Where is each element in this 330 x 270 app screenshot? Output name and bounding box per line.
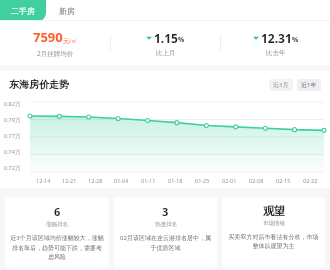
staticText: 近1年 [301,81,317,89]
staticText: 02-15 [276,177,291,184]
staticText: 12-21 [62,177,77,184]
staticText: 东海房价走势 [9,78,69,91]
staticText: 近3月 [273,81,289,89]
button[interactable]: 二手房 [0,0,46,21]
staticText: 02-08 [249,177,264,184]
button[interactable]: 6 [5,197,109,268]
button[interactable]: 近3月 [269,79,293,91]
staticText: 0.72万 [4,164,21,172]
staticText: 12-28 [88,177,103,184]
staticText: 12.31 [261,30,292,46]
staticText: 7590 [33,28,63,46]
staticText: 1.15 [154,30,178,46]
button[interactable]: 观望 [222,197,325,268]
button[interactable]: 近1年 [297,79,321,91]
staticText: % [178,35,185,45]
staticText: 02月该区域在连云港排名居中，属于优质区域 [119,234,212,252]
staticText: 01-04 [114,177,129,184]
staticText: 01-18 [168,177,183,184]
staticText: 01-25 [195,177,210,184]
staticText: 3 [162,204,169,219]
staticText: 6 [54,204,61,219]
staticText: 观望 [263,204,285,218]
staticText: 12-14 [36,177,51,184]
staticText: 近3个月该区域均价涨幅较大，涨幅排名靠后，趋势可能下跌，需要考虑风险 [10,234,104,261]
staticText: 热度排名 [155,221,177,228]
staticText: 01-11 [141,177,156,184]
staticText: 元/㎡ [63,37,78,45]
staticText: 0.79万 [4,116,21,124]
staticText: 0.82万 [4,100,21,108]
button[interactable]: 3 [114,197,217,268]
staticText: 新房 [59,6,75,16]
staticText: 二手房 [11,6,35,16]
staticText: 买卖双方对后市看法有分歧，市场整体以观望为主 [227,233,320,250]
staticText: % [292,35,299,45]
staticText: 02-01 [222,177,237,184]
staticText: 02-22 [303,177,318,184]
staticText: 0.77万 [4,132,21,140]
button[interactable]: 新房 [46,0,88,21]
staticText: 市场情绪 [263,220,285,227]
staticText: 比上月 [156,49,176,57]
staticText: 比去年 [266,49,286,57]
staticText: 涨幅排名 [46,221,68,228]
staticText: 2月挂牌均价 [37,49,74,58]
staticText: 0.74万 [4,148,21,156]
